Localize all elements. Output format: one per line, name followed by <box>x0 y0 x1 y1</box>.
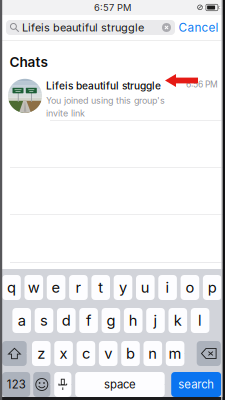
button[interactable]: 123 <box>2 372 30 397</box>
staticText: e <box>52 279 61 296</box>
staticText: r <box>75 279 81 296</box>
staticText: k <box>174 312 182 329</box>
staticText: c <box>82 345 90 362</box>
staticText: a <box>18 312 26 329</box>
button[interactable]: Cancel <box>178 20 219 35</box>
staticText: s <box>40 312 48 329</box>
button[interactable]: h <box>124 308 142 333</box>
staticText: q <box>7 279 16 296</box>
button[interactable]: d <box>57 308 76 333</box>
staticText: l <box>198 312 202 329</box>
button[interactable]: r <box>69 275 88 300</box>
button[interactable]: Shift <box>2 341 27 366</box>
button[interactable]: 6:56 PM <box>0 73 225 120</box>
button[interactable]: v <box>99 341 117 366</box>
staticText: m <box>169 345 182 362</box>
button[interactable]: u <box>136 275 155 300</box>
staticText: u <box>141 279 150 296</box>
staticText: y <box>119 279 127 296</box>
staticText: Cancel <box>178 20 218 35</box>
button[interactable]: y <box>114 275 132 300</box>
button[interactable]: o <box>181 275 199 300</box>
button[interactable]: g <box>102 308 120 333</box>
staticText: h <box>129 312 138 329</box>
staticText: i <box>166 279 170 296</box>
staticText: space <box>104 378 136 391</box>
button[interactable]: b <box>121 341 140 366</box>
button[interactable]: Dictate <box>54 372 71 397</box>
button[interactable]: w <box>24 275 43 300</box>
button[interactable]: q <box>2 275 21 300</box>
staticText: Chats <box>9 54 47 70</box>
button[interactable]: m <box>166 341 184 366</box>
staticText: w <box>28 279 40 296</box>
staticText: z <box>37 345 45 362</box>
staticText: Lifeis beautiful struggle <box>46 80 161 92</box>
button[interactable]: c <box>77 341 95 366</box>
staticText: x <box>60 345 68 362</box>
button[interactable]: j <box>146 308 165 333</box>
staticText: f <box>86 312 91 329</box>
button[interactable]: e <box>47 275 65 300</box>
button[interactable]: f <box>79 308 98 333</box>
staticText: p <box>208 279 217 296</box>
staticText: n <box>148 345 157 362</box>
button[interactable]: s <box>35 308 53 333</box>
button[interactable]: p <box>203 275 221 300</box>
staticText: 123 <box>7 378 26 391</box>
button[interactable]: t <box>91 275 110 300</box>
button[interactable]: search <box>171 372 221 397</box>
button[interactable]: k <box>168 308 187 333</box>
staticText: v <box>104 345 112 362</box>
staticText: g <box>106 312 115 329</box>
button[interactable]: l <box>191 308 209 333</box>
staticText: t <box>98 279 103 296</box>
staticText: You joined using this group's <box>46 95 165 106</box>
staticText: search <box>178 378 214 391</box>
button[interactable]: z <box>32 341 51 366</box>
staticText: 6:56 PM <box>186 79 218 90</box>
button[interactable]: Delete <box>197 341 221 366</box>
staticText: j <box>153 312 157 329</box>
button[interactable]: Emoji <box>33 372 50 397</box>
staticText: o <box>185 279 194 296</box>
button[interactable]: x <box>54 341 73 366</box>
staticText: invite link <box>46 108 85 119</box>
button[interactable]: i <box>158 275 177 300</box>
staticText: d <box>62 312 71 329</box>
staticText: b <box>126 345 135 362</box>
button[interactable]: space <box>75 372 165 397</box>
button[interactable]: n <box>143 341 162 366</box>
staticText: 6:57 PM <box>94 2 131 13</box>
button[interactable]: a <box>12 308 31 333</box>
staticText: Lifeis beautiful struggle <box>22 21 144 34</box>
